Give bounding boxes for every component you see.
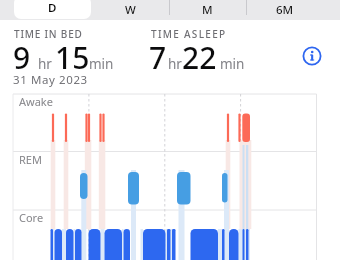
button[interactable] (302, 46, 322, 66)
staticText: 31 May 2023 (13, 72, 88, 88)
staticText: Core (19, 210, 44, 225)
staticText: hr (38, 55, 52, 73)
staticText: TIME ASLEEP (151, 27, 227, 41)
staticText: D (48, 0, 57, 16)
staticText: 7 (149, 37, 167, 78)
staticText: REM (19, 152, 42, 167)
staticText: min (220, 55, 245, 73)
staticText: min (89, 55, 114, 73)
button[interactable]: M (169, 0, 246, 20)
button[interactable]: W (91, 0, 169, 20)
staticText: 15 (55, 37, 90, 78)
staticText: 6M (276, 2, 294, 18)
staticText: Awake (19, 94, 53, 109)
staticText: 22 (182, 37, 217, 78)
staticText: M (202, 2, 213, 18)
button[interactable]: 6M (246, 0, 323, 20)
button[interactable]: D (14, 0, 91, 19)
staticText: TIME IN BED (14, 27, 83, 41)
staticText: W (125, 2, 136, 18)
staticText: hr (168, 55, 182, 73)
staticText: 9 (13, 37, 31, 78)
